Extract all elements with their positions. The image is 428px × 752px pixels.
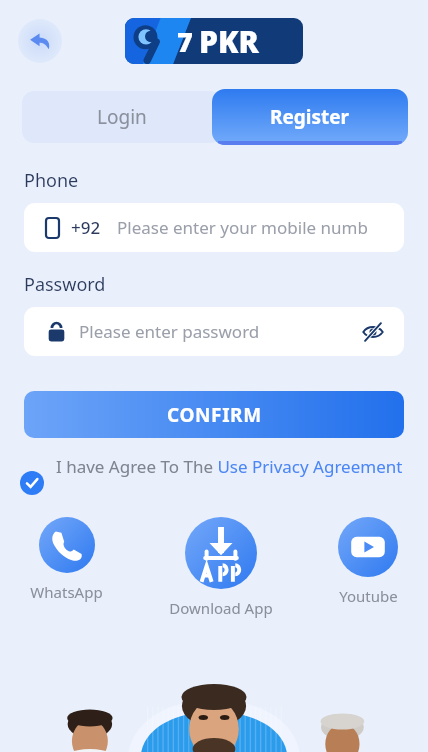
button[interactable]: Download App: [165, 517, 277, 618]
other: Agree checkbox: [20, 471, 44, 495]
button[interactable]: Register: [212, 89, 408, 145]
staticText: WhatsApp: [30, 582, 103, 602]
button[interactable]: WhatsApp: [26, 517, 107, 602]
staticText: I have Agree To The Use Privacy Agreemen…: [56, 455, 403, 478]
button[interactable]: Back: [18, 19, 62, 63]
button[interactable]: Please enter password: [24, 307, 404, 356]
button[interactable]: Login: [22, 91, 222, 143]
staticText: Please enter your mobile numb: [117, 216, 368, 239]
staticText: Download App: [169, 598, 273, 618]
staticText: Login: [97, 104, 147, 130]
button[interactable]: CONFIRM: [24, 391, 404, 438]
staticText: Password: [24, 272, 106, 297]
staticText: Register: [270, 104, 350, 130]
button[interactable]: +92: [24, 203, 404, 252]
button[interactable]: Show password: [360, 319, 386, 345]
staticText: 7: [177, 23, 193, 60]
staticText: PKR: [199, 21, 259, 62]
button[interactable]: 97PKR logo: [125, 18, 303, 64]
staticText: Youtube: [339, 586, 398, 606]
staticText: Please enter password: [79, 320, 360, 343]
button[interactable]: Agree checkbox: [20, 455, 404, 495]
staticText: CONFIRM: [167, 402, 262, 428]
staticText: +92: [71, 216, 101, 239]
button[interactable]: Youtube: [334, 517, 402, 606]
staticText: Phone: [24, 168, 79, 193]
